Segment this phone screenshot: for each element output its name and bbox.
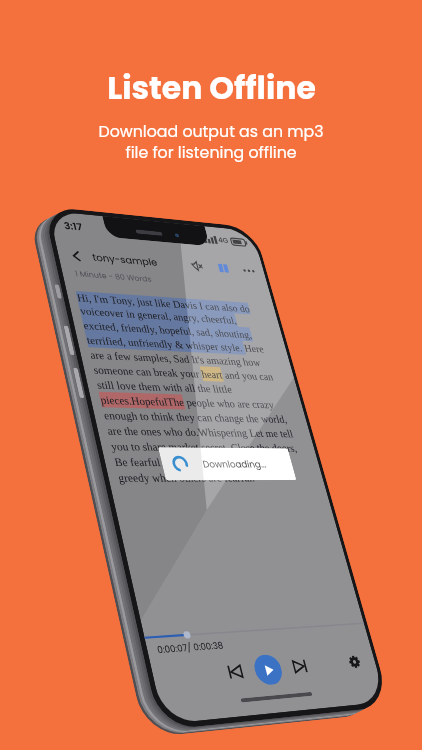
staticText: Hi, I'm Tony, just like Davis I can also…: [76, 291, 311, 486]
button[interactable]: Previous: [221, 659, 248, 685]
staticText: 0:00:07/ 0:00:38: [156, 639, 225, 657]
button[interactable]: Back: [64, 245, 89, 266]
button[interactable]: Settings: [343, 651, 366, 673]
staticText: Listen Offline: [107, 66, 316, 110]
button[interactable]: Mute: [187, 257, 208, 275]
button[interactable]: Dictionary: [213, 259, 233, 277]
button[interactable]: More options: [238, 261, 258, 279]
staticText: 1 Minute - 80 Words: [74, 268, 153, 285]
staticText: Downloading...: [201, 458, 268, 471]
staticText: tony-sample: [91, 251, 159, 270]
staticText: 3:17: [63, 219, 84, 235]
staticText: 4G: [217, 235, 230, 246]
staticText: Download output as an mp3 file for liste…: [98, 120, 324, 164]
button[interactable]: Next: [287, 654, 313, 679]
button[interactable]: Play: [251, 654, 285, 686]
